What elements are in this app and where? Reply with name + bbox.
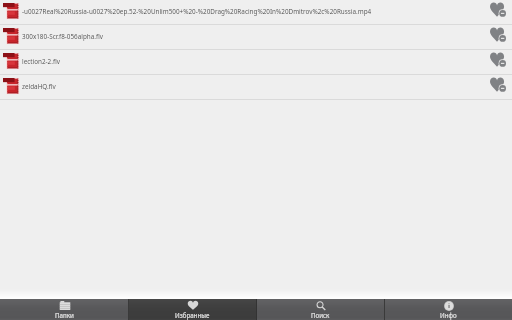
button[interactable]: Избранные: [128, 299, 256, 320]
button[interactable]: 300x180-Scr.f8-056alpha.flv: [0, 25, 512, 50]
button[interactable]: zeldaHQ.flv: [0, 75, 512, 100]
staticText: Инфо: [440, 311, 457, 319]
button[interactable]: -u0027Real%20Russia-u0027%20ep.52-%20Unl…: [0, 0, 512, 25]
button[interactable]: lection2-2.flv: [0, 50, 512, 75]
button[interactable]: Remove from favourites: [486, 50, 508, 74]
staticText: lection2-2.flv: [22, 57, 488, 66]
button[interactable]: Remove from favourites: [486, 25, 508, 49]
staticText: Поиск: [311, 311, 330, 319]
button[interactable]: Remove from favourites: [486, 75, 508, 99]
staticText: Избранные: [175, 311, 210, 319]
button[interactable]: Remove from favourites: [486, 0, 508, 24]
staticText: Папки: [55, 311, 74, 319]
button[interactable]: Инфо: [384, 299, 512, 320]
staticText: zeldaHQ.flv: [22, 82, 488, 91]
staticText: 300x180-Scr.f8-056alpha.flv: [22, 32, 488, 41]
button[interactable]: Папки: [0, 299, 128, 320]
button[interactable]: Поиск: [256, 299, 384, 320]
staticText: -u0027Real%20Russia-u0027%20ep.52-%20Unl…: [22, 7, 488, 16]
